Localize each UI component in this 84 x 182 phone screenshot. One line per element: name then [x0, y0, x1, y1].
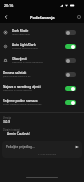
staticText: Prilagodi sistemskoj temi — [12, 47, 38, 50]
button[interactable]: Back — [0, 11, 11, 23]
button[interactable]: Info — [73, 11, 84, 23]
button[interactable]: Auto Light/Dark — [0, 39, 84, 53]
staticText: Najava o narednog vijesti — [3, 85, 41, 89]
button[interactable]: Pošaljite prijedlog... — [2, 141, 82, 158]
button[interactable]: Najava o narednog vijesti — [0, 81, 84, 95]
staticText: Obavijesti o novim vijestima — [3, 89, 32, 92]
button[interactable]: Toggle — [65, 86, 76, 91]
staticText: Armin Ćaušević — [7, 132, 30, 136]
button[interactable]: Toggle — [65, 30, 76, 35]
staticText: Auto Light/Dark — [12, 43, 36, 47]
staticText: Obavijesti o novim sadržajima — [12, 61, 43, 64]
staticText: Obavijesti — [12, 57, 27, 61]
staticText: 0 / 500 karaktera — [38, 153, 57, 156]
button[interactable]: Obavijesti — [0, 53, 84, 67]
button[interactable]: Toggle — [65, 72, 76, 77]
staticText: 20:16 — [4, 3, 14, 8]
staticText: Dnevna sažetak — [3, 71, 27, 75]
staticText: Dizajn i razvoj — [3, 128, 20, 132]
staticText: Jedan sažetak dnevno u 8h — [3, 75, 31, 78]
staticText: Podešavanja — [30, 15, 55, 20]
button[interactable]: Toggle — [65, 100, 76, 105]
staticText: Tamni režim rada — [12, 33, 30, 36]
staticText: Pošaljite prijedlog... — [6, 145, 73, 149]
button[interactable]: Toggle — [65, 58, 76, 63]
staticText: Prikaz vremena podne namaza pored — [3, 103, 42, 106]
button[interactable]: Dnevna sažetak — [0, 67, 84, 81]
button[interactable]: Toggle — [65, 44, 76, 49]
staticText: 3.0.9 — [3, 120, 10, 124]
button[interactable]: Dark Mode — [0, 25, 84, 39]
staticText: Snijeme podne namaza — [3, 99, 38, 103]
staticText: Verzija — [3, 116, 12, 120]
staticText: Dark Mode — [12, 29, 29, 33]
button[interactable]: Snijeme podne namaza — [0, 95, 84, 109]
button[interactable]: Send — [73, 143, 80, 150]
